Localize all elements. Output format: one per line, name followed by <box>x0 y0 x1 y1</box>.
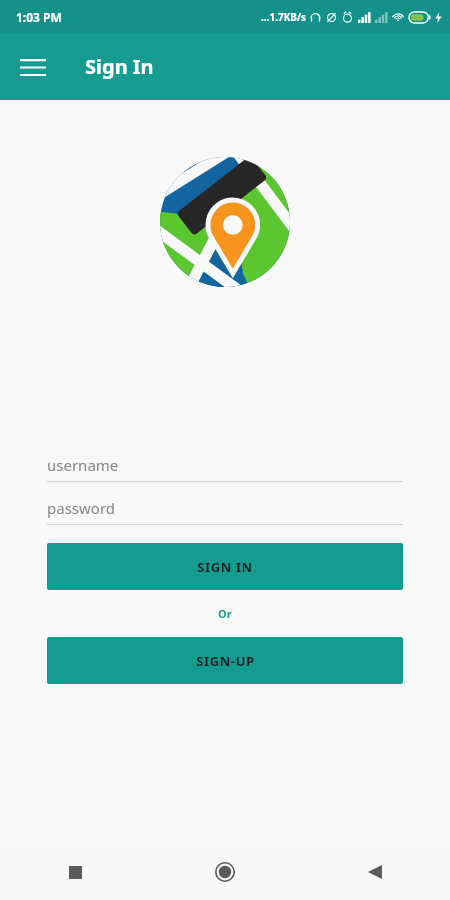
staticText: Sign In <box>85 53 154 80</box>
button[interactable]: SIGN-UP <box>47 637 403 684</box>
staticText: SIGN-UP <box>196 652 255 670</box>
button[interactable]: Home <box>150 844 300 900</box>
button[interactable]: Recent apps <box>0 844 150 900</box>
staticText: 1:03 PM <box>16 9 62 25</box>
button[interactable]: username <box>47 455 403 482</box>
button[interactable]: Back <box>300 844 450 900</box>
staticText: Or <box>218 606 232 621</box>
staticText: ...1.7KB/s <box>261 10 307 24</box>
staticText: username <box>47 455 119 475</box>
staticText: password <box>47 498 115 518</box>
button[interactable]: SIGN IN <box>47 543 403 590</box>
button[interactable]: password <box>47 498 403 525</box>
button[interactable]: Open navigation menu <box>12 46 54 88</box>
staticText: SIGN IN <box>197 558 253 576</box>
